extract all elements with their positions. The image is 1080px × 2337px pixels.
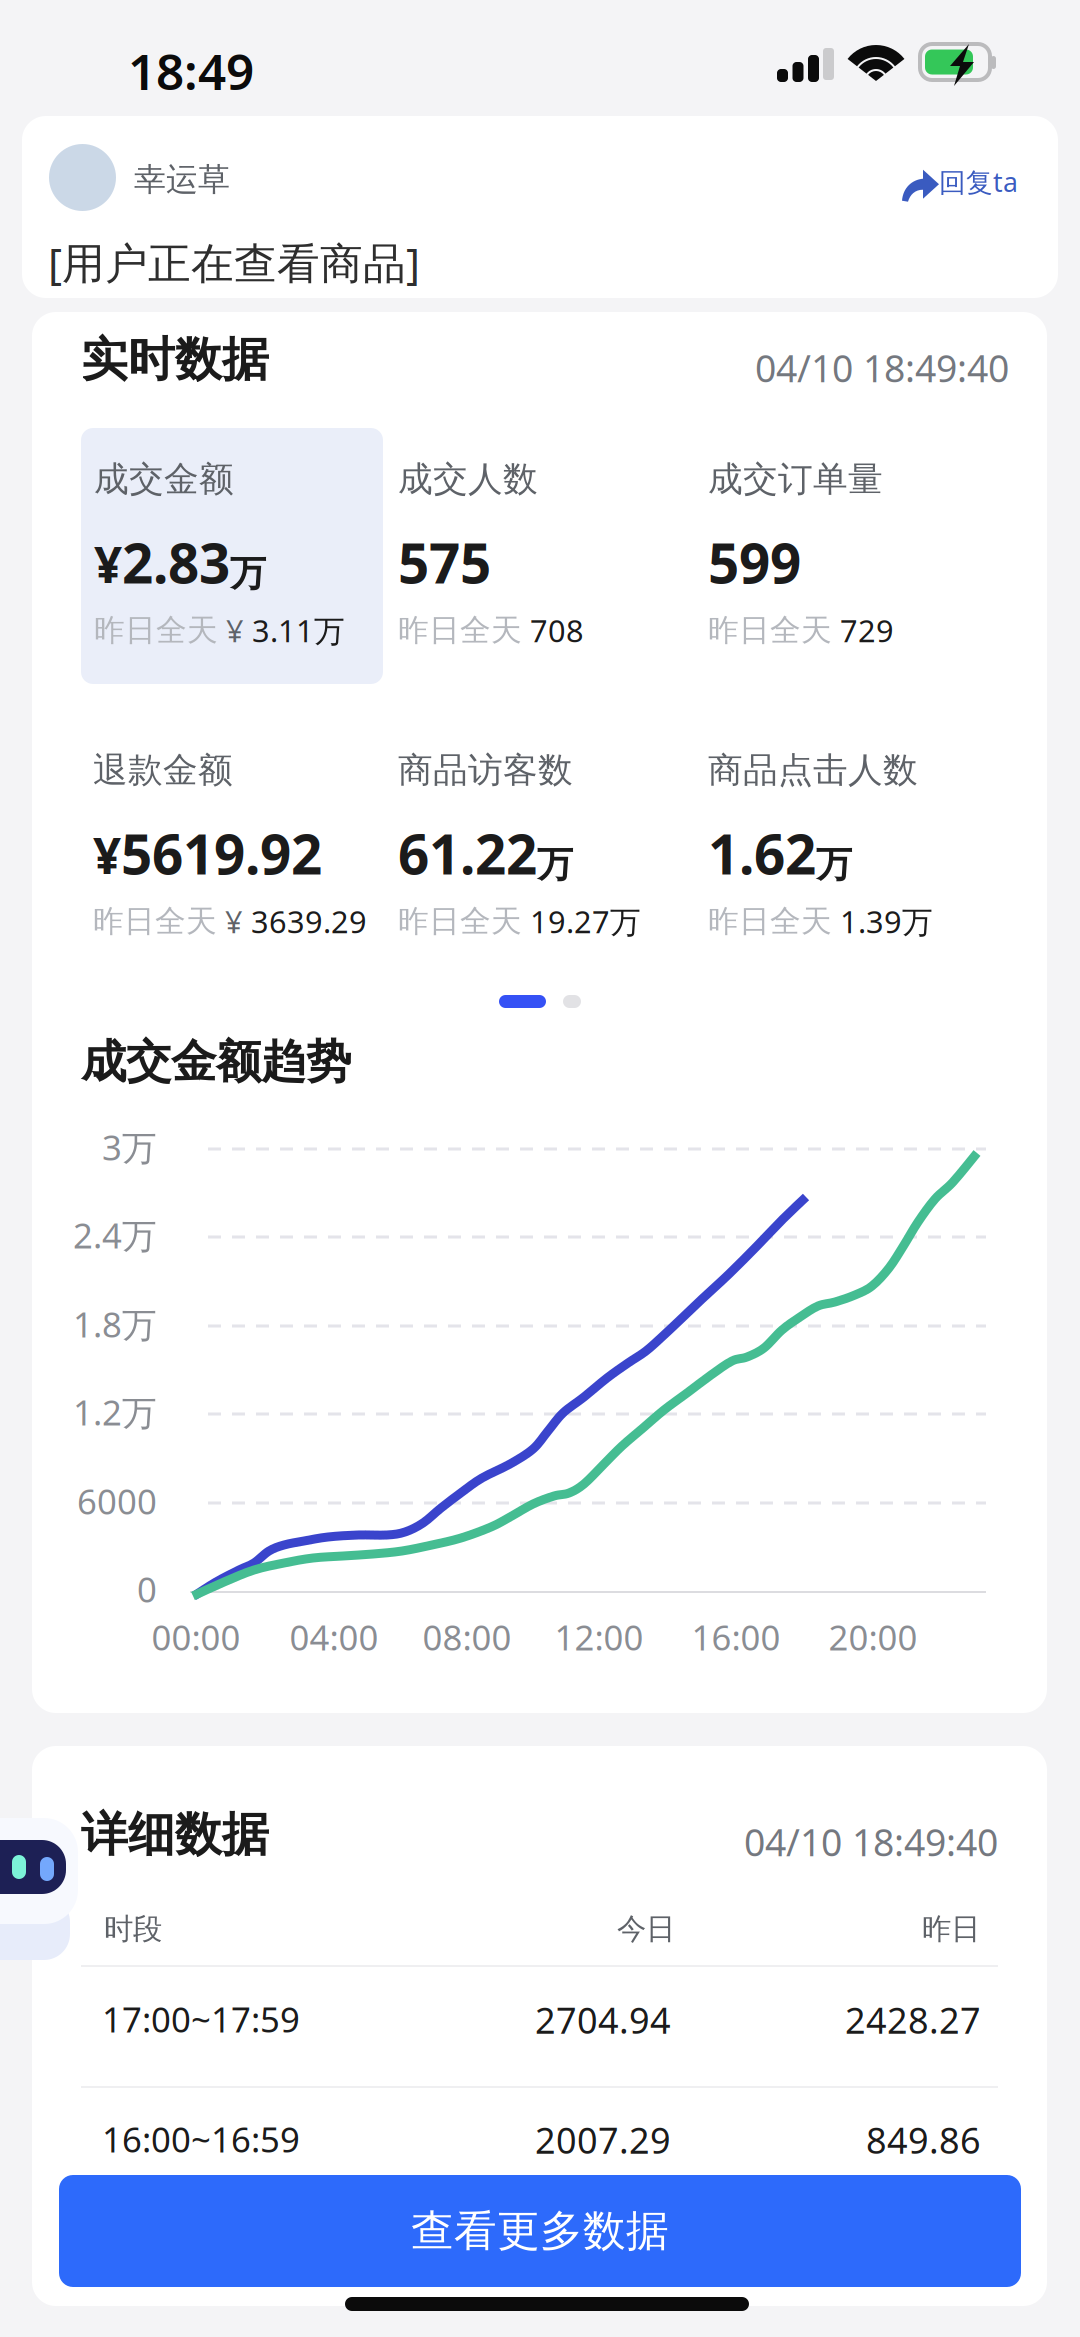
- staticText: 3.11万: [252, 610, 345, 651]
- staticText: 成交金额趋势: [81, 1034, 351, 1090]
- staticText: 08:00: [422, 1614, 511, 1660]
- staticText: 2428.27: [845, 1996, 981, 2044]
- staticText: 昨日全天: [94, 611, 218, 649]
- staticText: 2007.29: [535, 2116, 671, 2164]
- staticText: ¥: [94, 531, 122, 597]
- staticText: ¥: [218, 610, 252, 651]
- staticText: [用户正在查看商品]: [48, 234, 420, 291]
- staticText: 6000: [77, 1478, 157, 1524]
- staticText: 04:00: [289, 1614, 378, 1660]
- staticText: 2704.94: [535, 1996, 671, 2044]
- staticText: 2.4万: [73, 1212, 157, 1258]
- button[interactable]: 回复ta: [902, 156, 1018, 207]
- staticText: 708: [530, 610, 584, 651]
- staticText: 昨日全天: [398, 611, 522, 649]
- staticText: 2.83: [122, 526, 230, 599]
- staticText: 万: [230, 551, 266, 596]
- staticText: 1.62: [708, 817, 816, 890]
- staticText: 昨日全天: [708, 902, 832, 940]
- staticText: 00:00: [151, 1614, 240, 1660]
- staticText: 849.86: [866, 2116, 981, 2164]
- staticText: 17:00~17:59: [102, 1996, 300, 2042]
- staticText: 昨日全天: [93, 902, 217, 940]
- staticText: 16:00: [691, 1614, 780, 1660]
- staticText: 729: [840, 610, 894, 651]
- staticText: 04/10 18:49:40: [755, 343, 1009, 393]
- staticText: 商品访客数: [398, 749, 573, 792]
- staticText: 19.27万: [530, 901, 641, 942]
- staticText: 查看更多数据: [411, 2205, 669, 2257]
- staticText: 幸运草: [134, 160, 230, 199]
- staticText: ¥: [217, 901, 251, 942]
- staticText: 3万: [102, 1124, 157, 1170]
- staticText: 详细数据: [81, 1806, 269, 1863]
- staticText: 昨日全天: [708, 611, 832, 649]
- staticText: 61.22: [398, 817, 537, 890]
- button[interactable]: 查看更多数据: [59, 2175, 1021, 2287]
- staticText: 5619.92: [121, 817, 322, 890]
- staticText: 商品点击人数: [708, 749, 918, 792]
- staticText: 时段: [104, 1911, 162, 1947]
- staticText: 3639.29: [251, 901, 367, 942]
- staticText: 今日: [617, 1911, 675, 1947]
- staticText: 04/10 18:49:40: [744, 1817, 998, 1867]
- staticText: 0: [137, 1566, 157, 1612]
- staticText: 实时数据: [81, 331, 269, 388]
- staticText: 万: [537, 842, 573, 887]
- staticText: 1.39万: [840, 901, 933, 942]
- staticText: 1.8万: [73, 1301, 157, 1347]
- staticText: 昨日全天: [398, 902, 522, 940]
- staticText: 回复ta: [939, 164, 1018, 199]
- staticText: 万: [816, 842, 852, 887]
- staticText: 16:00~16:59: [102, 2116, 300, 2162]
- staticText: 599: [708, 526, 801, 599]
- staticText: 1.2万: [73, 1389, 157, 1435]
- staticText: 成交人数: [398, 458, 538, 501]
- staticText: 退款金额: [93, 749, 233, 792]
- staticText: 12:00: [554, 1614, 643, 1660]
- staticText: 575: [398, 526, 491, 599]
- staticText: 昨日: [922, 1911, 980, 1947]
- staticText: ¥: [93, 822, 121, 888]
- staticText: 成交订单量: [708, 458, 883, 501]
- staticText: 成交金额: [94, 458, 234, 501]
- staticText: 18:49: [128, 38, 254, 103]
- staticText: 20:00: [828, 1614, 917, 1660]
